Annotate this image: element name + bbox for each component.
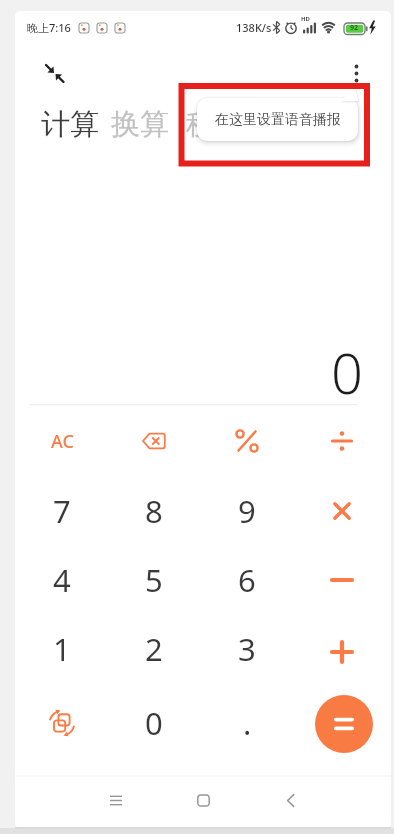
button[interactable]: 7 <box>19 480 105 542</box>
staticText: 晚上7:16 <box>27 20 71 35</box>
staticText: 在这里设置语音播报 <box>215 111 341 129</box>
button[interactable]: 9 <box>204 480 290 542</box>
staticText: 3 <box>238 628 256 670</box>
staticText: 9 <box>238 490 256 532</box>
button[interactable] <box>299 480 385 542</box>
button[interactable]: 0 <box>111 692 197 754</box>
staticText: 1 <box>53 628 71 670</box>
button[interactable]: 计算 <box>41 106 99 143</box>
button[interactable]: 8 <box>111 480 197 542</box>
staticText: 8 <box>145 490 163 532</box>
button[interactable]: 5 <box>111 549 197 611</box>
staticText: . <box>243 702 252 744</box>
button[interactable] <box>204 410 290 472</box>
button[interactable]: 6 <box>204 549 290 611</box>
button[interactable] <box>111 410 197 472</box>
staticText: 税贷 <box>186 106 244 143</box>
button[interactable]: 换算 <box>111 106 169 143</box>
button[interactable] <box>19 692 105 754</box>
staticText: 92 <box>350 23 359 33</box>
staticText: 2 <box>145 628 163 670</box>
staticText: HD <box>301 15 310 23</box>
staticText: 5 <box>145 559 163 601</box>
staticText: 0 <box>145 702 163 744</box>
button[interactable] <box>299 410 385 472</box>
staticText: 7 <box>53 490 71 532</box>
button[interactable]: 3 <box>204 618 290 680</box>
button[interactable] <box>299 549 385 611</box>
staticText: AC <box>51 429 74 454</box>
button[interactable] <box>315 695 373 753</box>
button[interactable] <box>299 621 385 683</box>
staticText: 计算 <box>41 106 99 143</box>
staticText: 0 <box>331 334 363 410</box>
staticText: 138K/s <box>236 20 272 35</box>
button[interactable]: . <box>204 692 290 754</box>
button[interactable]: 2 <box>111 618 197 680</box>
button[interactable]: AC <box>19 410 105 472</box>
staticText: 6 <box>238 559 256 601</box>
button[interactable]: 1 <box>19 618 105 680</box>
button[interactable]: 税贷 <box>186 106 244 143</box>
staticText: 换算 <box>111 106 169 143</box>
staticText: 4 <box>53 559 71 601</box>
button[interactable]: 4 <box>19 549 105 611</box>
